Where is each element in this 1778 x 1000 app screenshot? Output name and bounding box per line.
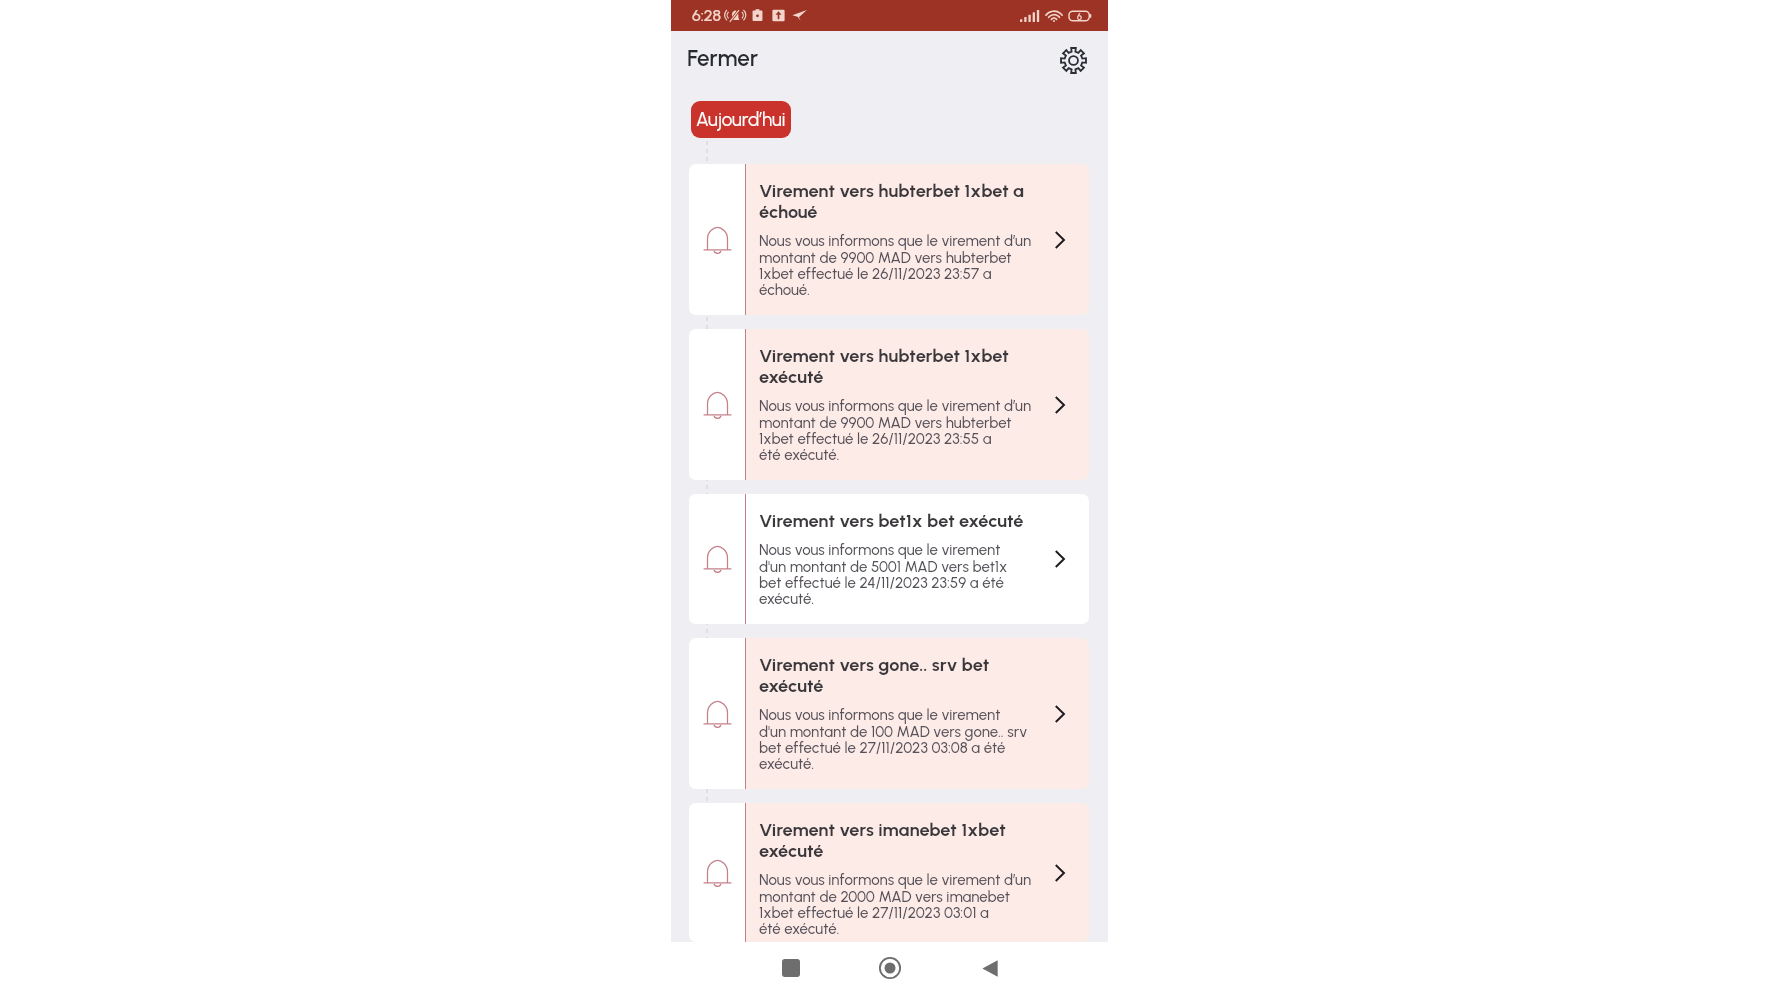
button[interactable]: Virement vers imanebet 1xbet exécuté — [689, 803, 1089, 942]
button[interactable]: Virement vers bet1x bet exécuté — [689, 494, 1089, 624]
staticText: Virement vers imanebet 1xbet exécuté — [759, 819, 1032, 862]
button[interactable]: Open notification — [1040, 694, 1080, 734]
button[interactable]: Fermer — [687, 45, 759, 72]
staticText: Nous vous informons que le virement d’un… — [759, 871, 1032, 938]
staticText: Nous vous informons que le virement d’un… — [759, 397, 1032, 464]
button[interactable]: Virement vers hubterbet 1xbet exécuté — [689, 329, 1089, 480]
staticText: Virement vers gone.. srv bet exécuté — [759, 654, 1032, 697]
staticText: 6 — [1077, 11, 1082, 22]
button[interactable]: Open notification — [1040, 220, 1080, 260]
button[interactable]: Open notification — [1040, 385, 1080, 425]
button[interactable]: Home — [867, 945, 913, 991]
button[interactable]: Open notification — [1040, 853, 1080, 893]
staticText: Virement vers bet1x bet exécuté — [759, 510, 1024, 532]
staticText: Virement vers hubterbet 1xbet exécuté — [759, 345, 1032, 388]
button[interactable]: Virement vers hubterbet 1xbet a échoué — [689, 164, 1089, 315]
staticText: Nous vous informons que le virement d'un… — [759, 541, 1008, 608]
button[interactable]: Back — [966, 945, 1012, 991]
button[interactable]: Aujourd’hui — [691, 101, 791, 138]
staticText: Nous vous informons que le virement d'un… — [759, 706, 1028, 773]
staticText: Aujourd’hui — [696, 108, 786, 131]
button[interactable]: Recents — [768, 945, 814, 991]
button[interactable]: Open notification — [1040, 539, 1080, 579]
staticText: 6:28 — [692, 6, 722, 25]
button[interactable]: Virement vers gone.. srv bet exécuté — [689, 638, 1089, 789]
button[interactable]: Settings — [1052, 37, 1094, 79]
staticText: Virement vers hubterbet 1xbet a échoué — [759, 180, 1032, 223]
staticText: Fermer — [687, 45, 759, 72]
staticText: Nous vous informons que le virement d’un… — [759, 232, 1032, 299]
